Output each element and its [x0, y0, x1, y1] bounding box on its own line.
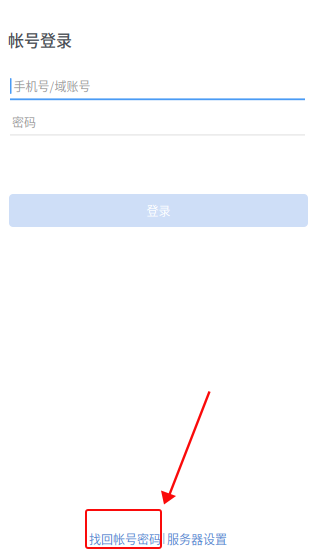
staticText: 帐号登录 [8, 28, 72, 51]
staticText: 服务器设置 [167, 530, 227, 548]
staticText: 手机号/域账号 [13, 77, 90, 95]
button[interactable]: 服务器设置 [166, 528, 228, 550]
staticText: 登录 [146, 202, 170, 219]
button[interactable]: 找回帐号密码 [88, 528, 162, 550]
button[interactable]: 登录 [9, 194, 308, 227]
staticText: 密码 [12, 113, 36, 131]
staticText: 找回帐号密码 [89, 530, 161, 548]
